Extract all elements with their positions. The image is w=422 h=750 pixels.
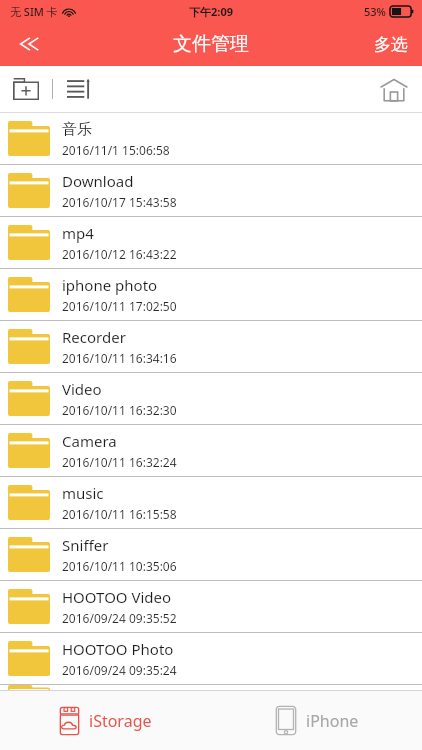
button[interactable]: Home [366, 66, 422, 112]
staticText: 2016/10/17 15:43:58 [62, 194, 177, 210]
staticText: 下午2:09 [189, 4, 233, 19]
button[interactable]: music [0, 477, 422, 529]
staticText: iStorage [89, 710, 152, 732]
button[interactable]: iStorage [0, 691, 211, 750]
staticText: 2016/10/12 16:43:22 [62, 246, 177, 262]
staticText: 2016/10/11 16:32:30 [62, 402, 177, 418]
staticText: Download [62, 171, 134, 191]
button[interactable]: 音乐 [0, 113, 422, 165]
button[interactable]: Camera [0, 425, 422, 477]
button[interactable]: Sort [53, 66, 105, 112]
staticText: 文件管理 [173, 32, 249, 56]
staticText: 2016/09/24 09:35:52 [62, 610, 177, 626]
staticText: 53% [364, 4, 386, 19]
button[interactable]: Video [0, 373, 422, 425]
button[interactable]: Recorder [0, 321, 422, 373]
button[interactable]: Back [0, 22, 62, 66]
button[interactable]: mp4 [0, 217, 422, 269]
button[interactable]: New folder [0, 66, 52, 112]
staticText: 2016/10/11 17:02:50 [62, 298, 177, 314]
staticText: 2016/10/11 10:35:06 [62, 558, 177, 574]
staticText: 2016/10/11 16:32:24 [62, 454, 177, 470]
staticText: 2016/09/24 09:35:24 [62, 662, 177, 678]
button[interactable]: iPhone [211, 691, 422, 750]
button[interactable]: iphone photo [0, 269, 422, 321]
staticText: music [62, 483, 104, 503]
staticText: Recorder [62, 327, 126, 347]
staticText: 音乐 [62, 120, 92, 139]
staticText: Video [62, 379, 102, 399]
staticText: Camera [62, 431, 117, 451]
button[interactable]: Sniffer [0, 529, 422, 581]
button[interactable]: HOOTOO Photo [0, 633, 422, 685]
staticText: Sniffer [62, 535, 109, 555]
staticText: mp4 [62, 223, 94, 243]
button[interactable]: 多选 [360, 22, 422, 66]
button[interactable]: HOOTOO Video [0, 581, 422, 633]
staticText: HOOTOO Photo [62, 639, 174, 659]
staticText: iphone photo [62, 275, 158, 295]
staticText: HOOTOO Video [62, 587, 172, 607]
staticText: iPhone [306, 710, 359, 732]
staticText: 多选 [374, 34, 408, 55]
staticText: 2016/10/11 16:15:58 [62, 506, 177, 522]
staticText: 2016/10/11 16:34:16 [62, 350, 177, 366]
staticText: 2016/11/1 15:06:58 [62, 142, 170, 158]
button[interactable]: Download [0, 165, 422, 217]
staticText: Movies [62, 685, 112, 702]
button[interactable]: Movies [0, 685, 422, 702]
staticText: 无 SIM 卡 [10, 4, 58, 19]
